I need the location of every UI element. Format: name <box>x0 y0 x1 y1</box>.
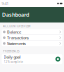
staticText: Transactions <box>7 35 29 40</box>
button[interactable]: Transactions <box>2 35 62 40</box>
button[interactable]: Statements <box>2 41 62 46</box>
staticText: 72% complete <box>4 60 24 64</box>
staticText: Balance <box>7 29 21 35</box>
staticText: Statements <box>7 41 26 46</box>
staticText: Daily goal <box>4 54 21 60</box>
staticText: PREFERENCES <box>3 49 19 53</box>
staticText: ACCOUNT OVERVIEW <box>3 24 30 28</box>
staticText: Dashboard <box>2 11 29 18</box>
button[interactable]: Balance <box>2 29 62 35</box>
staticText: 9:41 <box>2 1 9 6</box>
